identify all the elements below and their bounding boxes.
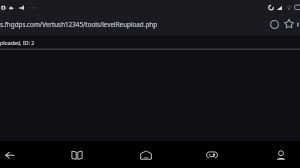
button[interactable]: Bookmark — [284, 19, 294, 29]
button[interactable]: Games — [198, 143, 226, 168]
button[interactable]: Back — [0, 143, 24, 168]
staticText: s.fhgdps.com/Vertush12345/tools/levelReu… — [0, 20, 158, 29]
button[interactable]: Home — [132, 143, 160, 168]
button[interactable]: Library — [63, 143, 91, 168]
staticText: ploaded, ID: 2 — [0, 39, 35, 46]
button[interactable]: Reader mode — [270, 20, 279, 29]
button[interactable]: s.fhgdps.com/Vertush12345/tools/levelReu… — [0, 13, 265, 34]
button[interactable]: Profile — [267, 143, 295, 168]
